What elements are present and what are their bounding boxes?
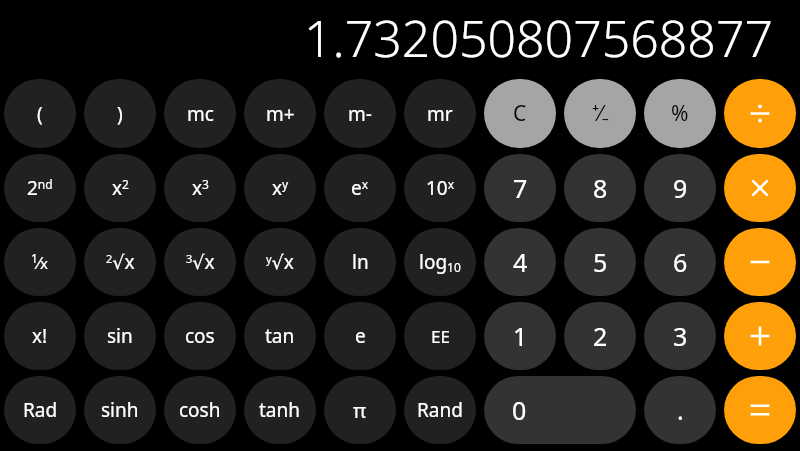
button[interactable]: m+ [244, 79, 316, 148]
button[interactable]: 3√x [164, 228, 236, 296]
button[interactable]: 5 [564, 228, 636, 296]
staticText: tanh [259, 397, 301, 423]
staticText: 2 [593, 319, 608, 353]
staticText: x2 [112, 175, 129, 201]
button[interactable]: 1 [484, 302, 556, 370]
staticText: 5 [593, 245, 608, 279]
staticText: 8 [593, 171, 608, 205]
staticText: ) [117, 101, 123, 127]
button[interactable]: Add [724, 302, 796, 370]
staticText: x! [32, 323, 48, 349]
button[interactable]: 4 [484, 228, 556, 296]
staticText: π [353, 397, 367, 424]
staticText: 7 [513, 171, 528, 205]
staticText: cos [185, 323, 215, 349]
staticText: e [355, 323, 366, 349]
button[interactable]: 8 [564, 154, 636, 222]
staticText: ⁺⁄₋ [592, 99, 609, 128]
staticText: 10x [426, 175, 455, 201]
button[interactable]: . [644, 376, 716, 444]
staticText: 2√x [106, 249, 135, 275]
button[interactable]: 1⁄x [4, 228, 76, 296]
staticText: ex [351, 175, 369, 201]
staticText: . [677, 393, 684, 427]
button[interactable]: log10 [404, 228, 476, 296]
button[interactable]: 9 [644, 154, 716, 222]
button[interactable]: x3 [164, 154, 236, 222]
button[interactable]: m- [324, 79, 396, 148]
button[interactable]: Multiply [724, 154, 796, 222]
staticText: tan [265, 323, 295, 349]
button[interactable]: π [324, 376, 396, 444]
staticText: cosh [179, 397, 221, 423]
staticText: 3 [673, 319, 688, 353]
staticText: ( [37, 101, 43, 127]
staticText: 2nd [27, 175, 53, 201]
staticText: 6 [673, 245, 688, 279]
staticText: m+ [266, 101, 295, 127]
button[interactable]: cos [164, 302, 236, 370]
button[interactable]: sinh [84, 376, 156, 444]
staticText: sin [107, 323, 133, 349]
staticText: 1 [513, 319, 528, 353]
staticText: ln [352, 249, 369, 275]
button[interactable]: Rad [4, 376, 76, 444]
button[interactable]: Divide [724, 79, 796, 148]
button[interactable]: tan [244, 302, 316, 370]
button[interactable]: C [484, 79, 556, 148]
staticText: C [513, 99, 527, 128]
staticText: EE [431, 325, 450, 348]
staticText: xy [272, 175, 289, 201]
button[interactable]: 6 [644, 228, 716, 296]
button[interactable]: ) [84, 79, 156, 148]
button[interactable]: 2nd [4, 154, 76, 222]
staticText: 1⁄x [31, 250, 49, 274]
button[interactable]: ⁺⁄₋ [564, 79, 636, 148]
staticText: x3 [192, 175, 209, 201]
button[interactable]: ln [324, 228, 396, 296]
button[interactable]: Subtract [724, 228, 796, 296]
staticText: 9 [673, 171, 688, 205]
button[interactable]: % [644, 79, 716, 148]
staticText: 1.732050807568877 [304, 4, 773, 72]
button[interactable]: cosh [164, 376, 236, 444]
button[interactable]: 3 [644, 302, 716, 370]
button[interactable]: 10x [404, 154, 476, 222]
button[interactable]: e [324, 302, 396, 370]
button[interactable]: ( [4, 79, 76, 148]
staticText: 4 [513, 245, 528, 279]
button[interactable]: mr [404, 79, 476, 148]
staticText: log10 [419, 249, 461, 275]
staticText: Rad [23, 397, 58, 423]
staticText: 3√x [186, 249, 215, 275]
button[interactable]: 7 [484, 154, 556, 222]
button[interactable]: mc [164, 79, 236, 148]
button[interactable]: 0 [484, 376, 636, 444]
staticText: mr [427, 101, 453, 127]
staticText: mc [187, 101, 214, 127]
button[interactable]: x2 [84, 154, 156, 222]
button[interactable]: y√x [244, 228, 316, 296]
button[interactable]: xy [244, 154, 316, 222]
button[interactable]: 2√x [84, 228, 156, 296]
staticText: sinh [101, 397, 139, 423]
button[interactable]: ex [324, 154, 396, 222]
button[interactable]: 2 [564, 302, 636, 370]
staticText: y√x [266, 249, 294, 275]
staticText: % [671, 99, 689, 128]
button[interactable]: x! [4, 302, 76, 370]
button[interactable]: sin [84, 302, 156, 370]
button[interactable]: Equals [724, 376, 796, 444]
staticText: 0 [512, 393, 527, 427]
staticText: m- [348, 101, 372, 127]
button[interactable]: Rand [404, 376, 476, 444]
staticText: Rand [417, 397, 463, 423]
button[interactable]: tanh [244, 376, 316, 444]
button[interactable]: EE [404, 302, 476, 370]
